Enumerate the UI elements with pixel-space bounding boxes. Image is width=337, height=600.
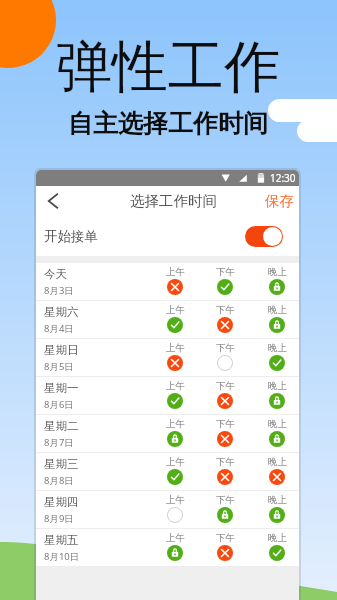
button[interactable]: 星期四 [36, 491, 299, 529]
staticText: 上午 [166, 380, 185, 392]
staticText: 8月9日 [44, 512, 74, 525]
button[interactable]: 星期二 [36, 415, 299, 453]
button[interactable]: 上午 [153, 304, 197, 339]
staticText: 选择工作时间 [130, 192, 217, 210]
staticText: 开始接单 [44, 228, 98, 245]
staticText: 晚上 [268, 532, 287, 544]
button[interactable]: 下午 [203, 494, 247, 529]
staticText: 8月3日 [44, 284, 74, 297]
staticText: 自主选择工作时间 [68, 108, 268, 139]
staticText: 上午 [166, 342, 185, 354]
button[interactable]: 下午 [203, 342, 247, 377]
staticText: 晚上 [268, 456, 287, 468]
button[interactable]: 晚上 [255, 418, 299, 453]
button[interactable]: 晚上 [255, 266, 299, 301]
staticText: 星期五 [44, 533, 79, 547]
button[interactable]: 开始接单开关 [245, 226, 283, 247]
button[interactable]: 下午 [203, 418, 247, 453]
staticText: 8月6日 [44, 398, 74, 411]
button[interactable]: 下午 [203, 532, 247, 567]
staticText: 星期六 [44, 305, 79, 319]
staticText: 晚上 [268, 342, 287, 354]
button[interactable]: 星期三 [36, 453, 299, 491]
staticText: 下午 [216, 494, 235, 506]
button[interactable]: 上午 [153, 380, 197, 415]
staticText: 8月10日 [44, 550, 80, 563]
staticText: 下午 [216, 456, 235, 468]
staticText: 星期一 [44, 381, 79, 395]
staticText: 星期日 [44, 343, 79, 357]
staticText: 星期三 [44, 457, 79, 471]
button[interactable]: 上午 [153, 266, 197, 301]
staticText: 下午 [216, 342, 235, 354]
staticText: 上午 [166, 266, 185, 278]
staticText: 星期二 [44, 419, 79, 433]
staticText: 今天 [44, 267, 67, 281]
button[interactable]: 下午 [203, 266, 247, 301]
staticText: 晚上 [268, 380, 287, 392]
button[interactable]: 晚上 [255, 342, 299, 377]
button[interactable]: 星期五 [36, 529, 299, 567]
button[interactable]: 下午 [203, 380, 247, 415]
staticText: 下午 [216, 532, 235, 544]
staticText: 下午 [216, 266, 235, 278]
button[interactable]: 上午 [153, 494, 197, 529]
staticText: 8月5日 [44, 360, 74, 373]
button[interactable]: 返回 [36, 186, 70, 216]
button[interactable]: 晚上 [255, 494, 299, 529]
staticText: 上午 [166, 494, 185, 506]
staticText: 上午 [166, 456, 185, 468]
button[interactable]: 星期六 [36, 301, 299, 339]
staticText: 8月8日 [44, 474, 74, 487]
button[interactable]: 上午 [153, 418, 197, 453]
button[interactable]: 上午 [153, 342, 197, 377]
button[interactable]: 上午 [153, 532, 197, 567]
staticText: 上午 [166, 304, 185, 316]
button[interactable]: 下午 [203, 304, 247, 339]
staticText: 8月7日 [44, 436, 74, 449]
staticText: 上午 [166, 418, 185, 430]
staticText: 晚上 [268, 266, 287, 278]
button[interactable]: 星期日 [36, 339, 299, 377]
staticText: 12:30 [270, 171, 296, 185]
staticText: 下午 [216, 418, 235, 430]
button[interactable]: 上午 [153, 456, 197, 491]
button[interactable]: 晚上 [255, 456, 299, 491]
button[interactable]: 晚上 [255, 380, 299, 415]
button[interactable]: 保存 [265, 186, 294, 216]
staticText: 下午 [216, 380, 235, 392]
staticText: 弹性工作 [56, 32, 280, 103]
staticText: 晚上 [268, 494, 287, 506]
button[interactable]: 晚上 [255, 304, 299, 339]
staticText: 上午 [166, 532, 185, 544]
button[interactable]: 今天 [36, 263, 299, 301]
button[interactable]: 晚上 [255, 532, 299, 567]
staticText: 星期四 [44, 495, 79, 509]
staticText: 晚上 [268, 418, 287, 430]
staticText: 下午 [216, 304, 235, 316]
button[interactable]: 星期一 [36, 377, 299, 415]
staticText: 晚上 [268, 304, 287, 316]
staticText: 保存 [265, 192, 294, 210]
staticText: 8月4日 [44, 322, 74, 335]
button[interactable]: 下午 [203, 456, 247, 491]
